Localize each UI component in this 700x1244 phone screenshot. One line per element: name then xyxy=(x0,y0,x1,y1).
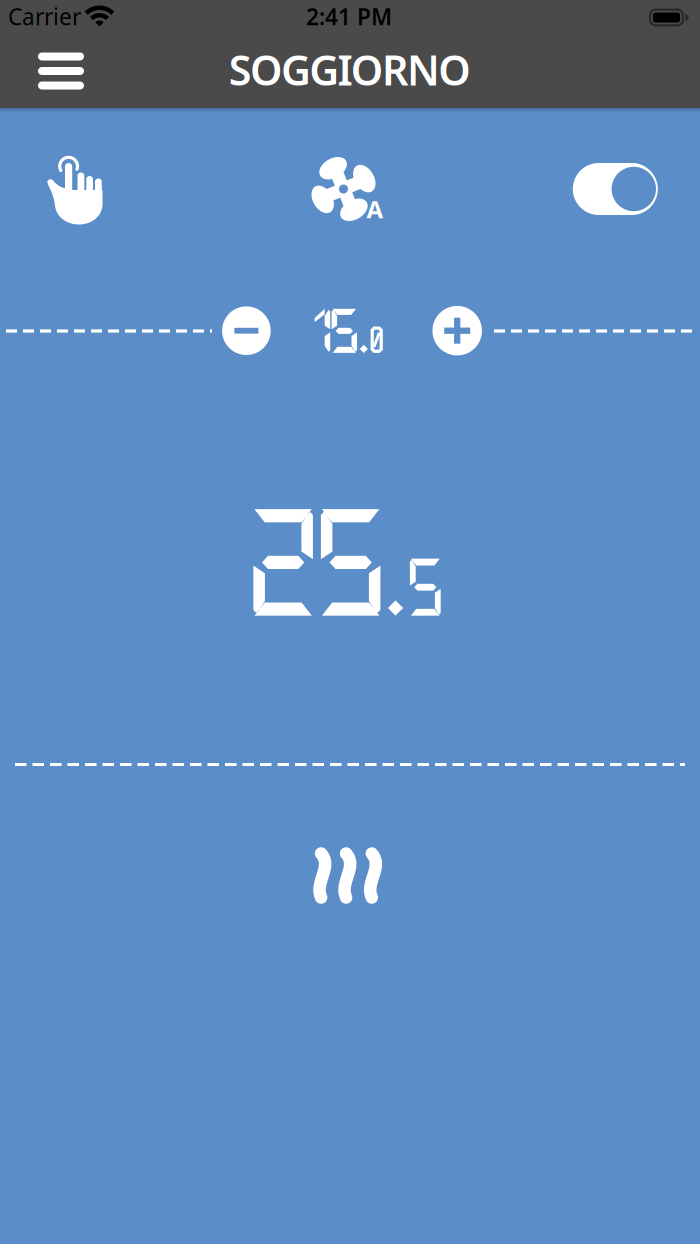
button[interactable]: Power xyxy=(573,163,658,215)
button[interactable]: Menu xyxy=(38,52,84,89)
staticText: A xyxy=(366,193,383,225)
button[interactable]: Increase temperature xyxy=(432,306,482,355)
staticText: 2:41 PM xyxy=(306,1,392,31)
staticText: SOGGIORNO xyxy=(229,42,471,97)
button[interactable]: Decrease temperature xyxy=(222,306,271,355)
staticText: Carrier xyxy=(8,1,81,31)
button[interactable]: Fan auto mode xyxy=(310,158,382,222)
button[interactable]: Manual mode xyxy=(45,152,109,226)
